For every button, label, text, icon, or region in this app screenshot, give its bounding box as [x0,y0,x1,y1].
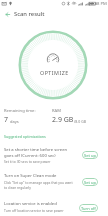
staticText: Remaining time: [4,108,36,114]
button[interactable]: Back [2,9,13,20]
staticText: Click "Set up" to manage apps that you w… [4,180,73,190]
staticText: /8.0 GB [74,119,86,124]
staticText: Suggested optimizations [4,134,46,139]
staticText: Turn off location service to save power [4,208,64,212]
button[interactable]: Set up [82,151,98,159]
staticText: Set up [84,153,96,158]
staticText: Location service is enabled [4,201,57,207]
button[interactable]: Set up [82,178,98,186]
staticText: OPTIMIZE [40,69,69,76]
staticText: 2.9 GB [52,115,74,125]
staticText: Scan result [14,10,45,18]
staticText: 2:48 PM [91,1,107,7]
staticText: Set up [84,180,96,185]
staticText: Set it to 30 secs to save power [4,159,51,163]
staticText: RAM [52,108,61,114]
staticText: Set a shorter time before screen goes of… [4,147,73,158]
staticText: Turn on Super Clean mode [4,173,57,179]
staticText: days [9,119,19,124]
button[interactable]: Turn off [79,204,98,212]
staticText: 7 [4,115,9,125]
staticText: Turn off [81,206,96,211]
